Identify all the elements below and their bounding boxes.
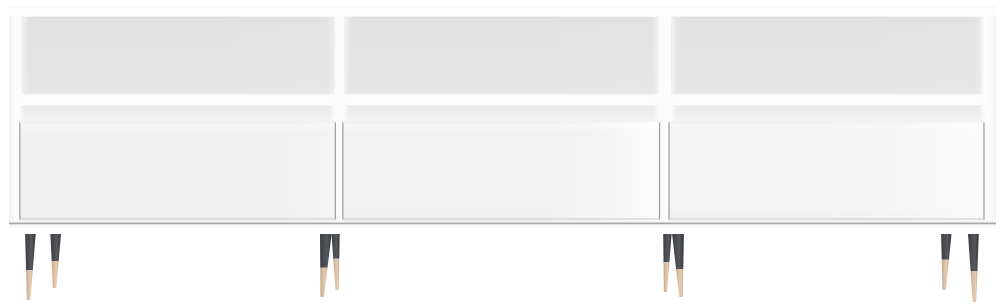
- button[interactable]: White high gloss TV cabinet with three o…: [0, 0, 1003, 307]
- button[interactable]: Drawer 1: [19, 122, 336, 222]
- button[interactable]: Drawer 2: [342, 122, 660, 222]
- button[interactable]: Drawer 3: [668, 122, 984, 222]
